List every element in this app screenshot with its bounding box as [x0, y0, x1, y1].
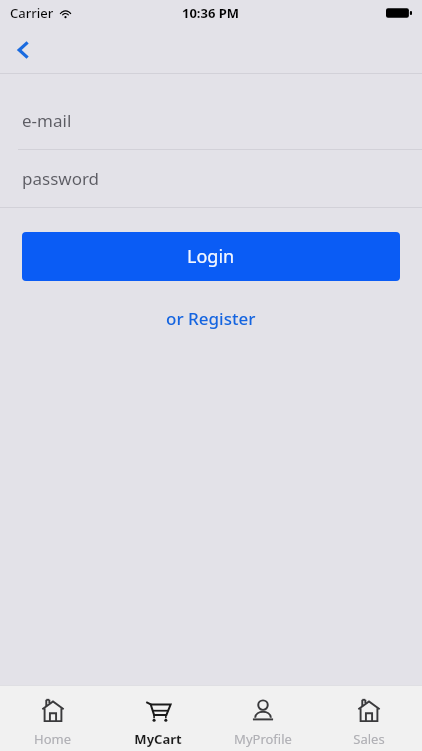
button[interactable]: My Cart — [105, 690, 210, 748]
other: Home — [39, 697, 67, 725]
button[interactable]: Home — [316, 690, 422, 748]
other: My Profile — [249, 697, 277, 725]
button[interactable]: Login — [22, 232, 400, 281]
staticText: Login — [187, 244, 235, 269]
other: Home — [355, 697, 383, 725]
button[interactable]: password — [0, 150, 422, 208]
staticText: Home — [34, 730, 71, 748]
button[interactable]: Home — [0, 690, 105, 748]
button[interactable]: My Profile — [210, 690, 316, 748]
staticText: e-mail — [22, 109, 72, 132]
staticText: password — [22, 167, 100, 190]
staticText: Carrier — [10, 4, 54, 22]
staticText: Sales — [353, 730, 385, 748]
staticText: MyCart — [134, 730, 182, 748]
staticText: or Register — [166, 307, 256, 330]
staticText: 10:36 PM — [182, 4, 240, 22]
other: My Cart — [144, 697, 172, 725]
button[interactable]: e-mail — [0, 92, 422, 150]
staticText: MyProfile — [234, 730, 292, 748]
button[interactable]: Back — [4, 30, 44, 70]
button[interactable]: or Register — [0, 307, 422, 330]
